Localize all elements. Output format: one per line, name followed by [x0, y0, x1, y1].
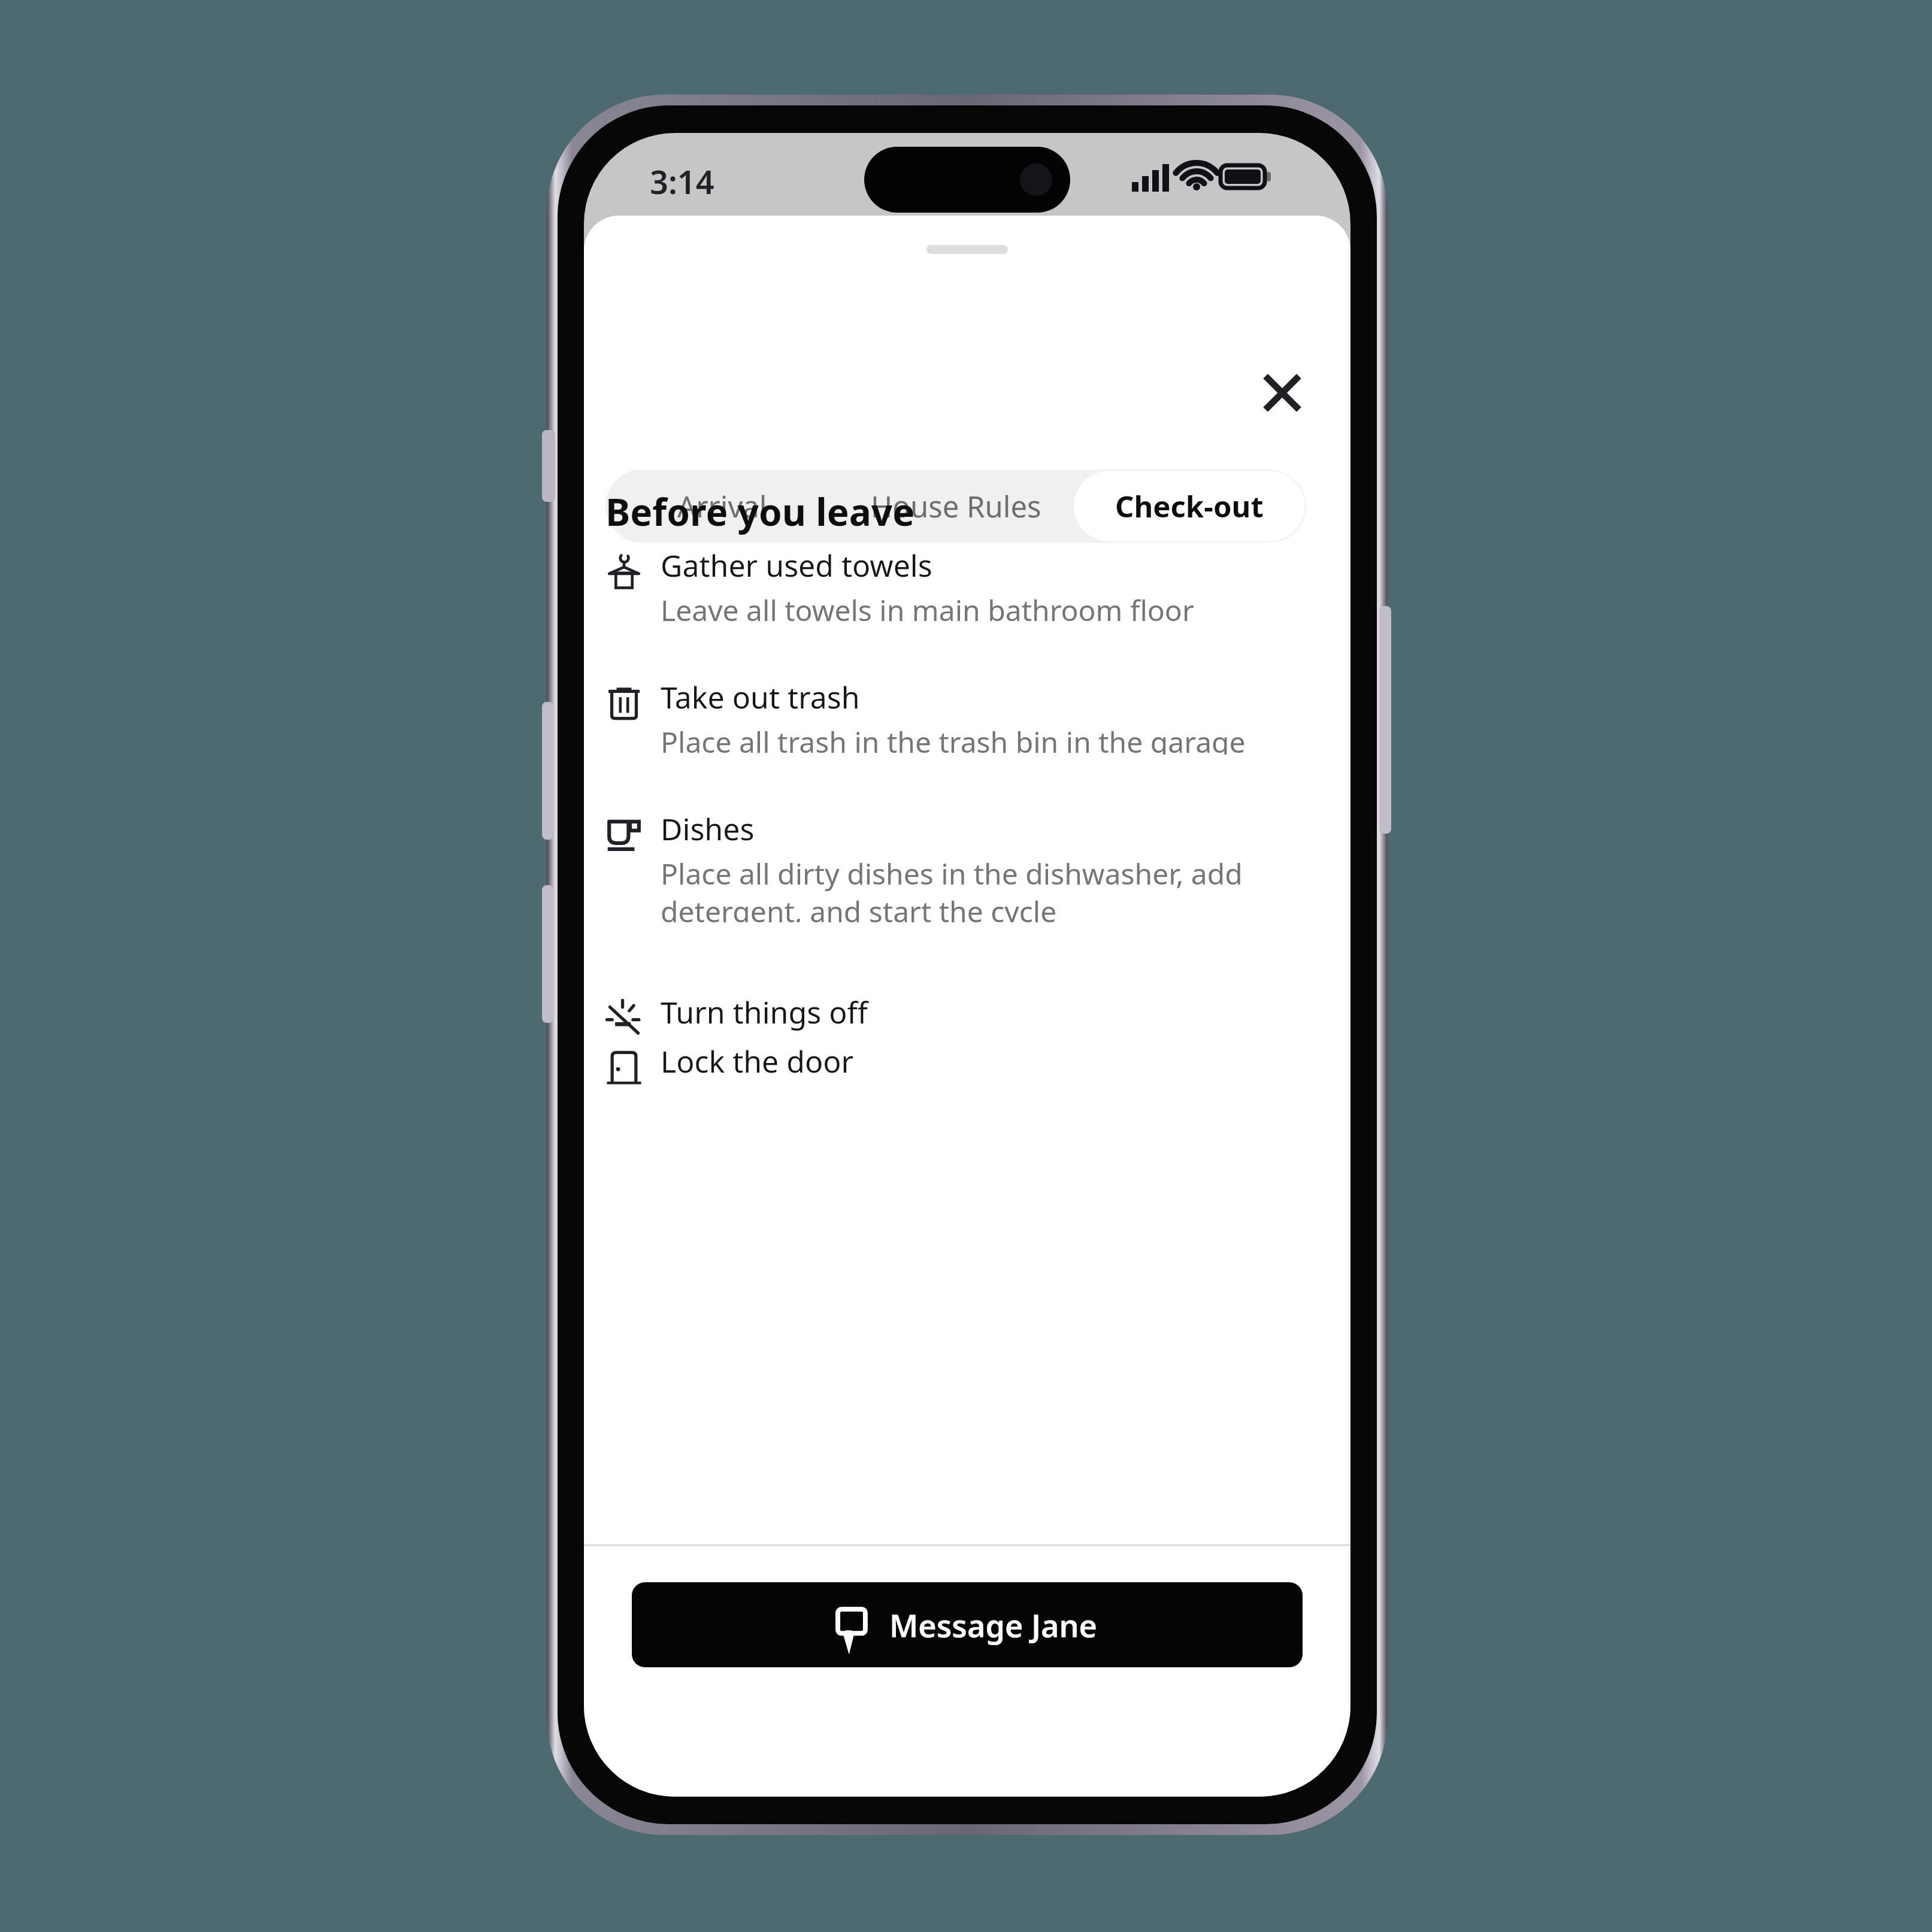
staticText: House Rules	[871, 486, 1041, 526]
button[interactable]: Dishes	[605, 812, 1329, 926]
staticText: Take out trash	[661, 677, 860, 717]
button[interactable]: Arrival	[605, 470, 839, 543]
button[interactable]: Gather used towels	[605, 549, 1329, 626]
staticText: Turn things off	[661, 992, 868, 1032]
staticText: Leave all towels in main bathroom floor	[661, 590, 1194, 623]
staticText: Gather used towels	[661, 545, 932, 586]
button[interactable]: Check-out	[1074, 471, 1305, 541]
staticText: Place all trash in the trash bin in the …	[661, 722, 1246, 755]
staticText: Arrival	[677, 486, 767, 526]
staticText: Place all dirty dishes in the dishwasher…	[661, 854, 1329, 922]
button[interactable]: Lock the door	[605, 1044, 1329, 1110]
button[interactable]: Turn things off	[605, 995, 1329, 1061]
button[interactable]: Take out trash	[605, 680, 1329, 758]
staticText: Before you leave	[605, 486, 915, 537]
button[interactable]: House Rules	[839, 470, 1073, 543]
button[interactable]: Close	[1250, 361, 1315, 425]
staticText: Check-out	[1115, 486, 1264, 526]
staticText: Message Jane	[889, 1604, 1097, 1646]
staticText: 3:14	[650, 159, 714, 204]
staticText: Dishes	[661, 808, 755, 849]
button[interactable]: Message Jane	[632, 1582, 1303, 1667]
staticText: Lock the door	[661, 1041, 854, 1082]
